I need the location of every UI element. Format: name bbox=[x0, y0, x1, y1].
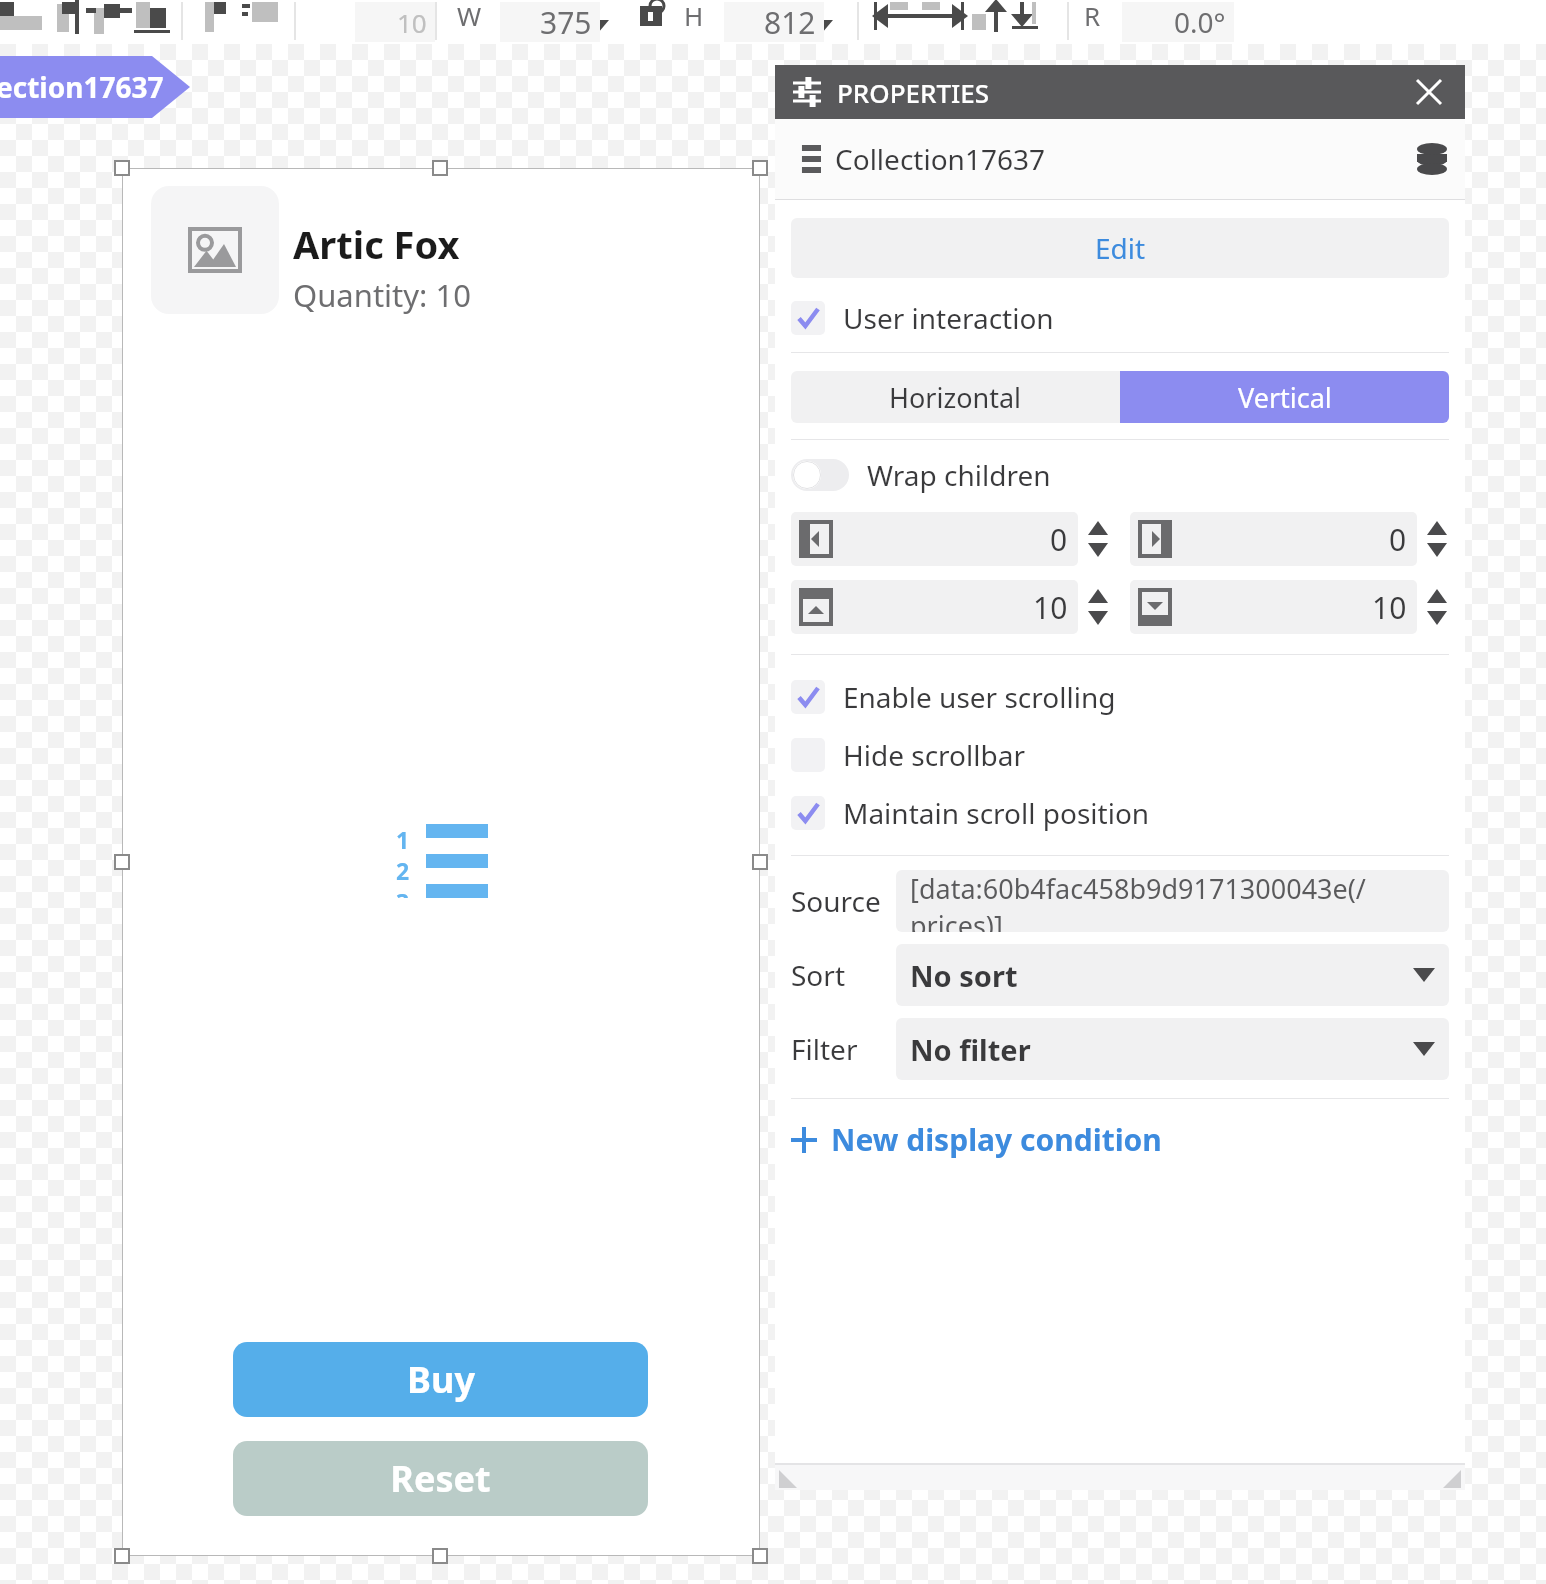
staticText: W bbox=[457, 0, 482, 33]
staticText: Source bbox=[791, 882, 881, 920]
staticText: 375 bbox=[540, 2, 592, 42]
button[interactable]: Close bbox=[1411, 74, 1447, 110]
button[interactable]: 10 bbox=[801, 580, 1068, 634]
staticText: Quantity: 10 bbox=[293, 274, 471, 316]
staticText: Maintain scroll position bbox=[843, 794, 1150, 832]
button[interactable]: Product image bbox=[151, 186, 279, 314]
staticText: 10 bbox=[1372, 587, 1407, 628]
staticText: 2 bbox=[396, 855, 410, 886]
button[interactable]: Horizontal bbox=[791, 371, 1120, 423]
staticText: 1 bbox=[396, 824, 410, 855]
staticText: 3 bbox=[396, 886, 410, 898]
staticText: Artic Fox bbox=[293, 218, 460, 270]
button[interactable]: Enable user scrolling bbox=[791, 671, 1449, 723]
button[interactable]: 0 bbox=[801, 512, 1068, 566]
button[interactable]: No filter bbox=[910, 1018, 1435, 1080]
staticText: ection17637 bbox=[0, 68, 164, 106]
button[interactable]: Stepper bbox=[1425, 512, 1449, 566]
staticText: PROPERTIES bbox=[837, 75, 990, 110]
button[interactable]: Wrap children bbox=[791, 456, 1051, 494]
button[interactable]: Collection17637 bbox=[793, 119, 1447, 199]
button[interactable]: Vertical bbox=[1120, 371, 1449, 423]
staticText: User interaction bbox=[843, 299, 1054, 337]
button[interactable]: [data:60b4fac458b9d9171300043e(/prices)] bbox=[910, 870, 1435, 932]
staticText: No filter bbox=[910, 1030, 1031, 1069]
staticText: 10 bbox=[1033, 587, 1068, 628]
button[interactable]: Reset bbox=[233, 1441, 648, 1516]
staticText: Wrap children bbox=[867, 456, 1051, 494]
staticText: [data:60b4fac458b9d9171300043e(/prices)] bbox=[910, 870, 1435, 932]
staticText: H bbox=[684, 0, 704, 33]
button[interactable]: No sort bbox=[910, 944, 1435, 1006]
staticText: 812 bbox=[764, 2, 816, 42]
staticText: No sort bbox=[910, 956, 1018, 995]
staticText: R bbox=[1084, 0, 1101, 33]
button[interactable]: New display condition bbox=[791, 1119, 1162, 1160]
staticText: Horizontal bbox=[889, 379, 1022, 416]
staticText: 0 bbox=[1050, 519, 1068, 560]
button[interactable]: Buy bbox=[233, 1342, 648, 1417]
button[interactable]: Maintain scroll position bbox=[791, 787, 1449, 839]
staticText: 10 bbox=[397, 5, 427, 40]
button[interactable]: Stepper bbox=[1086, 580, 1110, 634]
staticText: Edit bbox=[1095, 229, 1146, 267]
staticText: Vertical bbox=[1238, 379, 1332, 416]
staticText: Collection17637 bbox=[835, 140, 1045, 178]
staticText: 0.0° bbox=[1174, 3, 1226, 41]
button[interactable]: Hide scrollbar bbox=[791, 729, 1449, 781]
button[interactable]: Stepper bbox=[1086, 512, 1110, 566]
button[interactable]: Stepper bbox=[1425, 580, 1449, 634]
button[interactable]: 10 bbox=[1140, 580, 1407, 634]
staticText: Hide scrollbar bbox=[843, 736, 1026, 774]
button[interactable]: User interaction bbox=[791, 292, 1449, 344]
staticText: Reset bbox=[390, 1454, 491, 1503]
staticText: Enable user scrolling bbox=[843, 678, 1116, 716]
button[interactable]: 0 bbox=[1140, 512, 1407, 566]
staticText: New display condition bbox=[831, 1119, 1162, 1160]
staticText: Sort bbox=[791, 956, 845, 994]
staticText: 0 bbox=[1389, 519, 1407, 560]
staticText: Buy bbox=[407, 1355, 475, 1404]
staticText: Filter bbox=[791, 1030, 858, 1068]
button[interactable]: Edit bbox=[791, 218, 1449, 278]
